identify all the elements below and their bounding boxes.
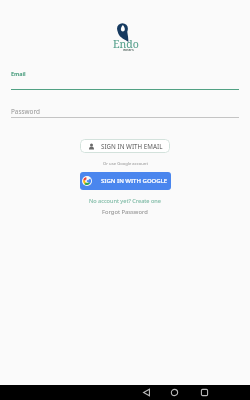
button[interactable]: SIGN IN WITH GOOGLE <box>80 172 171 190</box>
other: Home <box>171 389 178 396</box>
staticText: Or use Google account <box>103 161 148 167</box>
button[interactable]: Forgot Password <box>102 208 148 216</box>
button[interactable]: Password <box>11 103 239 118</box>
button[interactable]: Email <box>11 66 239 90</box>
button[interactable]: Back <box>132 385 160 400</box>
button[interactable]: Recent apps <box>190 385 218 400</box>
staticText: SIGN IN WITH EMAIL <box>101 142 163 150</box>
staticText: SIGN IN WITH GOOGLE <box>101 177 168 185</box>
other: Back <box>143 389 150 396</box>
staticText: wears <box>123 47 134 52</box>
button[interactable]: No account yet? Create one <box>89 197 161 205</box>
button[interactable]: SIGN IN WITH EMAIL <box>80 139 170 153</box>
staticText: Email <box>11 70 26 77</box>
other: Recent apps <box>201 389 208 396</box>
staticText: Endo <box>113 37 139 51</box>
staticText: Password <box>11 107 40 116</box>
button[interactable]: Home <box>160 385 188 400</box>
